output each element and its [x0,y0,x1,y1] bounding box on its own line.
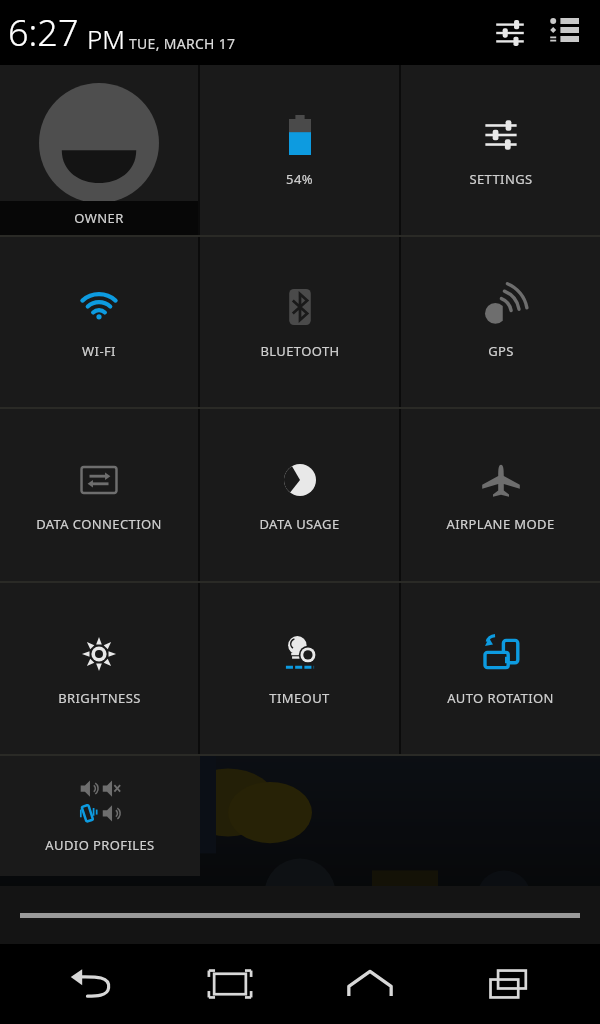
button[interactable]: 54% [200,65,399,235]
button[interactable]: DATA USAGE [200,409,399,581]
staticText: GPS [488,342,514,360]
staticText: DATA USAGE [259,515,340,533]
staticText: TIMEOUT [269,689,330,707]
button[interactable]: AUTO ROTATION [401,583,600,754]
button[interactable]: SETTINGS [401,65,600,235]
button[interactable]: AUDIO PROFILES [0,756,200,876]
staticText: DATA CONNECTION [36,515,162,533]
staticText: SETTINGS [469,170,533,188]
button[interactable]: Screenshot [182,944,278,1024]
button[interactable]: Quick settings [488,11,532,55]
staticText: OWNER [74,209,124,227]
button[interactable]: GPS [401,237,600,407]
button[interactable]: Recents [461,944,557,1024]
button[interactable]: WI-FI [0,237,198,407]
staticText: BRIGHTNESS [58,689,141,707]
staticText: 54% [286,170,313,188]
button[interactable]: AIRPLANE MODE [401,409,600,581]
staticText: WI-FI [82,342,116,360]
button[interactable]: BRIGHTNESS [0,583,198,754]
button[interactable]: TIMEOUT [200,583,399,754]
staticText: PM [87,21,125,56]
button[interactable]: Notifications [542,11,586,55]
button[interactable]: Back [43,944,139,1024]
staticText: BLUETOOTH [260,342,340,360]
staticText: AUTO ROTATION [447,689,554,707]
button[interactable]: DATA CONNECTION [0,409,198,581]
button[interactable]: Close quick settings [0,886,600,944]
staticText: 6:27 [8,8,79,57]
staticText: TUE, MARCH 17 [129,34,236,53]
button[interactable]: OWNER [0,65,198,235]
staticText: AUDIO PROFILES [45,836,155,854]
staticText: AIRPLANE MODE [446,515,555,533]
button[interactable]: Home [322,944,418,1024]
button[interactable]: BLUETOOTH [200,237,399,407]
